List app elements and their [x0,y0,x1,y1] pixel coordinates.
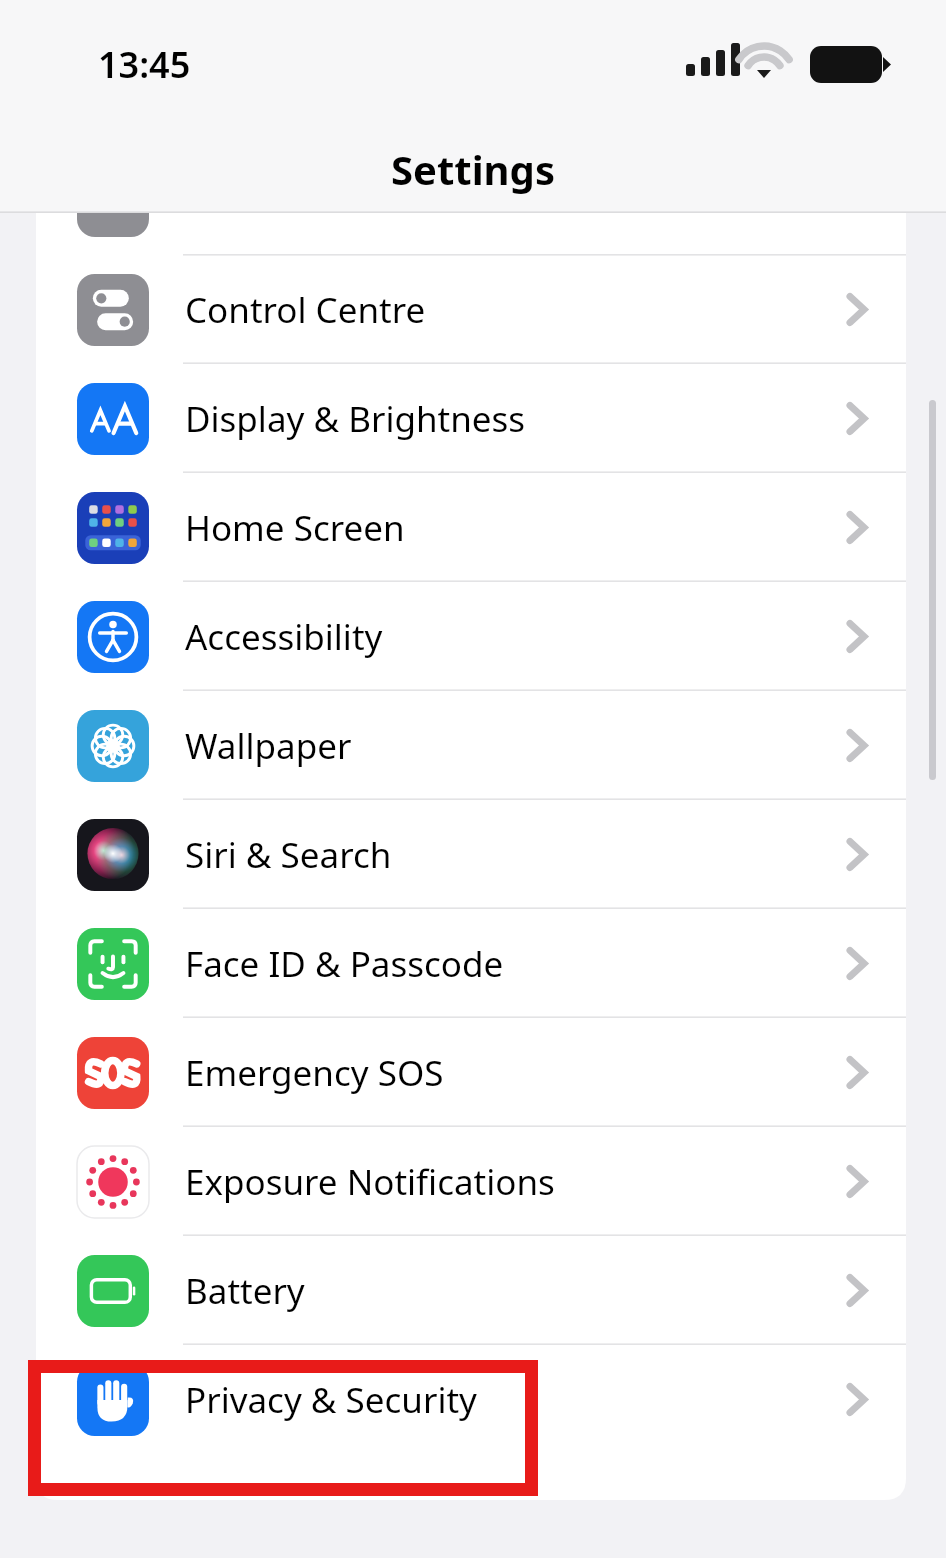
button[interactable]: Siri & Search [0,800,946,909]
staticText: Battery [185,1267,305,1315]
staticText: Emergency SOS [185,1049,444,1097]
button[interactable]: Face ID & Passcode [0,909,946,1018]
button[interactable]: Wallpaper [0,691,946,800]
button[interactable]: Emergency SOS [0,1018,946,1127]
staticText: Accessibility [185,613,383,661]
staticText: Settings [0,142,946,196]
button[interactable]: Exposure Notifications [0,1127,946,1236]
button[interactable]: Display & Brightness [0,364,946,473]
staticText: 13:45 [98,40,191,89]
staticText: Siri & Search [185,831,392,879]
staticText: Display & Brightness [185,395,526,443]
button[interactable]: Privacy & Security [0,1345,946,1454]
button[interactable]: Battery [0,1236,946,1345]
staticText: Privacy & Security [185,1376,477,1424]
button[interactable]: Control Centre [0,255,946,364]
staticText: Home Screen [185,504,405,552]
button[interactable]: Home Screen [0,473,946,582]
staticText: Face ID & Passcode [185,940,504,988]
staticText: Exposure Notifications [185,1158,555,1206]
button[interactable]: Accessibility [0,582,946,691]
staticText: Control Centre [185,286,426,334]
staticText: Wallpaper [185,722,352,770]
